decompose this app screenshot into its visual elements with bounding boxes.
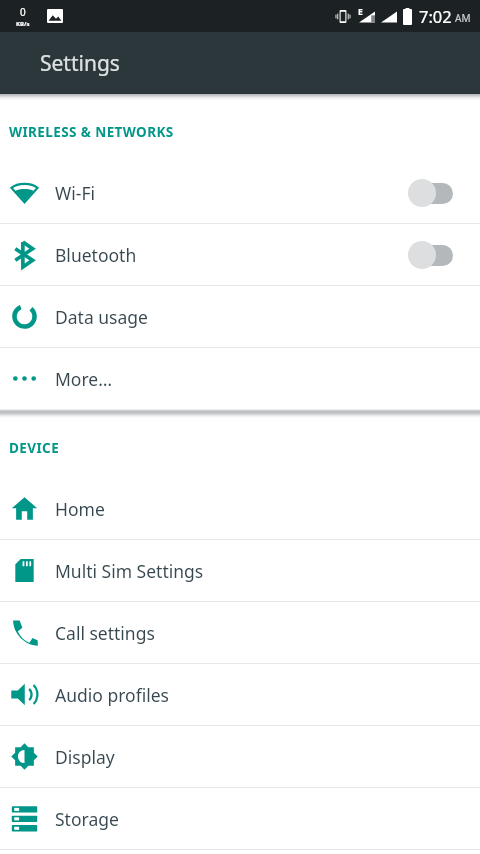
button[interactable]: Call settings <box>0 602 480 663</box>
staticText: 0 <box>20 5 26 19</box>
button[interactable]: Multi Sim Settings <box>0 540 480 601</box>
button[interactable]: Wi-Fi <box>0 162 480 223</box>
button[interactable]: Display <box>0 726 480 787</box>
staticText: Settings <box>40 49 120 78</box>
staticText: Storage <box>55 807 119 831</box>
staticText: KB/s <box>16 20 30 28</box>
staticText: WIRELESS & NETWORKS <box>9 123 174 141</box>
staticText: Wi-Fi <box>55 181 96 205</box>
staticText: E <box>358 6 363 18</box>
staticText: Home <box>55 497 105 521</box>
button[interactable]: More… <box>0 348 480 409</box>
other: Screenshot <box>47 9 63 23</box>
staticText: Display <box>55 745 115 769</box>
button[interactable]: Data usage <box>0 286 480 347</box>
button[interactable]: Toggle <box>407 238 463 272</box>
button[interactable]: Storage <box>0 788 480 849</box>
staticText: AM <box>455 11 471 25</box>
staticText: Multi Sim Settings <box>55 559 204 583</box>
button[interactable]: Audio profiles <box>0 664 480 725</box>
button[interactable]: Home <box>0 478 480 539</box>
staticText: 7:02 <box>419 5 452 27</box>
staticText: DEVICE <box>9 439 60 457</box>
button[interactable]: Bluetooth <box>0 224 480 285</box>
staticText: More… <box>55 367 113 391</box>
button[interactable]: Toggle <box>407 176 463 210</box>
staticText: Audio profiles <box>55 683 169 707</box>
staticText: Data usage <box>55 305 148 329</box>
staticText: Bluetooth <box>55 243 137 267</box>
staticText: Call settings <box>55 621 155 645</box>
